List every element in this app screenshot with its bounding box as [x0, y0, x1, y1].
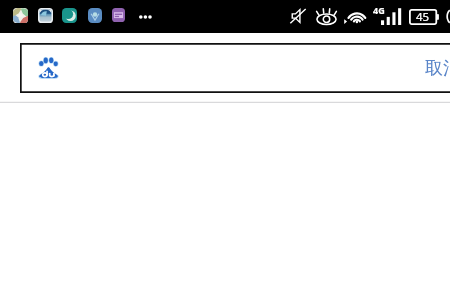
other: Silent mode — [290, 8, 306, 24]
other: Wi-Fi — [344, 8, 368, 24]
button[interactable]: 取消 — [416, 46, 450, 91]
button[interactable]: Search with Baidu — [22, 46, 412, 91]
staticText: 取消 — [425, 57, 450, 80]
staticText: 4G — [373, 4, 385, 16]
other: Eye comfort mode — [315, 8, 338, 25]
staticText: 45 — [416, 9, 430, 25]
other: More notifications — [139, 15, 153, 19]
other: Signal strength — [381, 8, 401, 25]
other: Battery 45 percent — [409, 9, 439, 25]
